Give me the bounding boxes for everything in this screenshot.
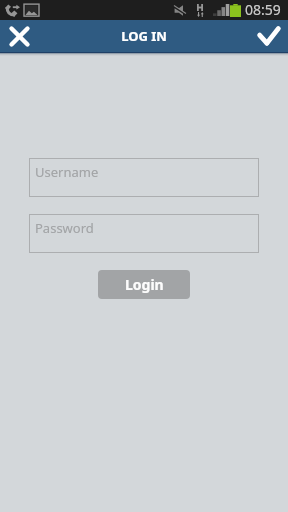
button[interactable]: Confirm <box>252 20 288 52</box>
staticText: LOG IN <box>0 27 288 45</box>
button[interactable]: Username <box>29 158 259 197</box>
staticText: Password <box>35 219 94 237</box>
staticText: Login <box>125 275 164 294</box>
staticText: 08:59 <box>245 0 281 19</box>
button[interactable]: Password <box>29 214 259 253</box>
button[interactable]: Cancel <box>0 20 36 52</box>
button[interactable]: Login <box>98 270 190 299</box>
staticText: Username <box>35 163 99 181</box>
